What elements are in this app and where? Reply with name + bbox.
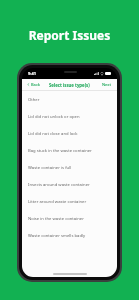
button[interactable]: Noise in the waste container bbox=[22, 210, 117, 227]
staticText: Report Issues bbox=[0, 27, 139, 43]
staticText: Bag stuck in the waste container bbox=[28, 148, 92, 154]
staticText: Back bbox=[31, 82, 41, 87]
staticText: Other bbox=[28, 97, 40, 103]
button[interactable]: Bag stuck in the waste container bbox=[22, 142, 117, 159]
staticText: Lid did not close and lock bbox=[28, 131, 78, 137]
staticText: Noise in the waste container bbox=[28, 216, 84, 222]
staticText: Litter around waste container bbox=[28, 199, 87, 205]
button[interactable]: Lid did not close and lock bbox=[22, 125, 117, 142]
button[interactable]: Insects around waste container bbox=[22, 176, 117, 193]
button[interactable]: Other bbox=[22, 91, 117, 108]
button[interactable]: Waste container is full bbox=[22, 159, 117, 176]
button[interactable]: Litter around waste container bbox=[22, 193, 117, 210]
button[interactable]: Waste container smells badly bbox=[22, 227, 117, 244]
staticText: Select issue type(s) bbox=[49, 82, 90, 88]
staticText: 9:41 bbox=[28, 71, 36, 76]
button[interactable]: Back bbox=[25, 80, 43, 89]
staticText: Waste container is full bbox=[28, 165, 72, 171]
staticText: Insects around waste container bbox=[28, 182, 90, 188]
staticText: Waste container smells badly bbox=[28, 233, 86, 239]
button[interactable]: Next bbox=[100, 80, 114, 89]
staticText: Lid did not unlock or open bbox=[28, 114, 80, 120]
button[interactable]: Lid did not unlock or open bbox=[22, 108, 117, 125]
